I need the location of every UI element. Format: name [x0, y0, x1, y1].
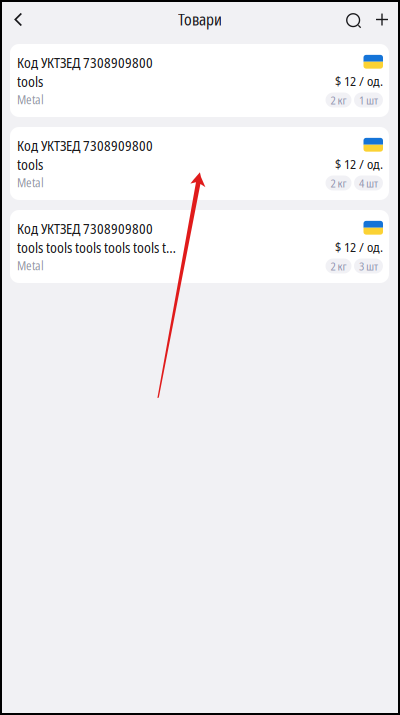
- staticText: 2 кг: [330, 92, 346, 108]
- button[interactable]: Add: [368, 0, 396, 39]
- staticText: Metal: [17, 91, 44, 108]
- staticText: tools tools tools tools tools tools t…: [17, 238, 178, 257]
- button[interactable]: Код УКТЗЕД 7308909800: [10, 44, 389, 117]
- staticText: 4 шт: [359, 175, 378, 191]
- staticText: $ 12 / од.: [335, 238, 383, 256]
- staticText: $ 12 / од.: [335, 155, 383, 173]
- staticText: tools: [17, 155, 43, 174]
- staticText: tools: [17, 72, 43, 91]
- staticText: 2 кг: [330, 258, 346, 274]
- staticText: Metal: [17, 174, 44, 191]
- staticText: 2 кг: [330, 175, 346, 191]
- staticText: Код УКТЗЕД 7308909800: [17, 136, 153, 155]
- staticText: 3 шт: [359, 258, 378, 274]
- staticText: Товари: [178, 9, 222, 30]
- staticText: Metal: [17, 257, 44, 274]
- button[interactable]: Код УКТЗЕД 7308909800: [10, 127, 389, 200]
- staticText: 1 шт: [359, 92, 378, 108]
- staticText: Код УКТЗЕД 7308909800: [17, 53, 153, 72]
- staticText: $ 12 / од.: [335, 72, 383, 90]
- button[interactable]: Search: [340, 0, 368, 39]
- button[interactable]: Код УКТЗЕД 7308909800: [10, 210, 389, 283]
- button[interactable]: Back: [3, 0, 33, 39]
- staticText: Код УКТЗЕД 7308909800: [17, 219, 153, 238]
